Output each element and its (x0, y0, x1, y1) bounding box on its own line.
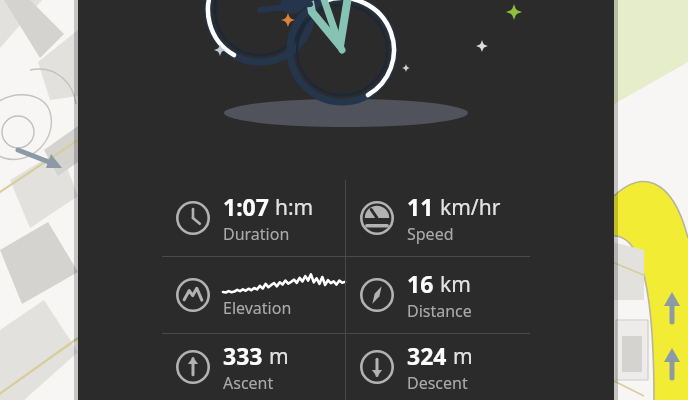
staticText: 16 (407, 268, 434, 299)
other: Descent (360, 350, 394, 384)
staticText: km/hr (440, 193, 501, 222)
staticText: 1:07 (223, 191, 269, 222)
staticText: Speed (407, 223, 454, 245)
other: Distance (360, 278, 394, 312)
staticText: Descent (407, 372, 468, 394)
button[interactable]: Elevation (162, 257, 345, 333)
other: Ascent (176, 350, 210, 384)
staticText: h:m (275, 193, 314, 222)
staticText: Distance (407, 300, 472, 322)
button[interactable]: Descent (346, 334, 530, 400)
button[interactable]: Duration (162, 180, 345, 256)
staticText: m (453, 342, 473, 371)
staticText: m (269, 342, 289, 371)
staticText: Ascent (223, 372, 274, 394)
staticText: 11 (407, 191, 434, 222)
button[interactable]: Ascent (162, 334, 345, 400)
other: Elevation (176, 278, 210, 312)
staticText: 324 (407, 340, 447, 371)
staticText: Duration (223, 223, 290, 245)
staticText: km (440, 270, 471, 299)
button[interactable]: Speed (346, 180, 530, 256)
other: Duration (176, 201, 210, 235)
staticText: Elevation (223, 297, 292, 319)
staticText: 333 (223, 340, 263, 371)
other: Speed (360, 201, 394, 235)
button[interactable]: Distance (346, 257, 530, 333)
